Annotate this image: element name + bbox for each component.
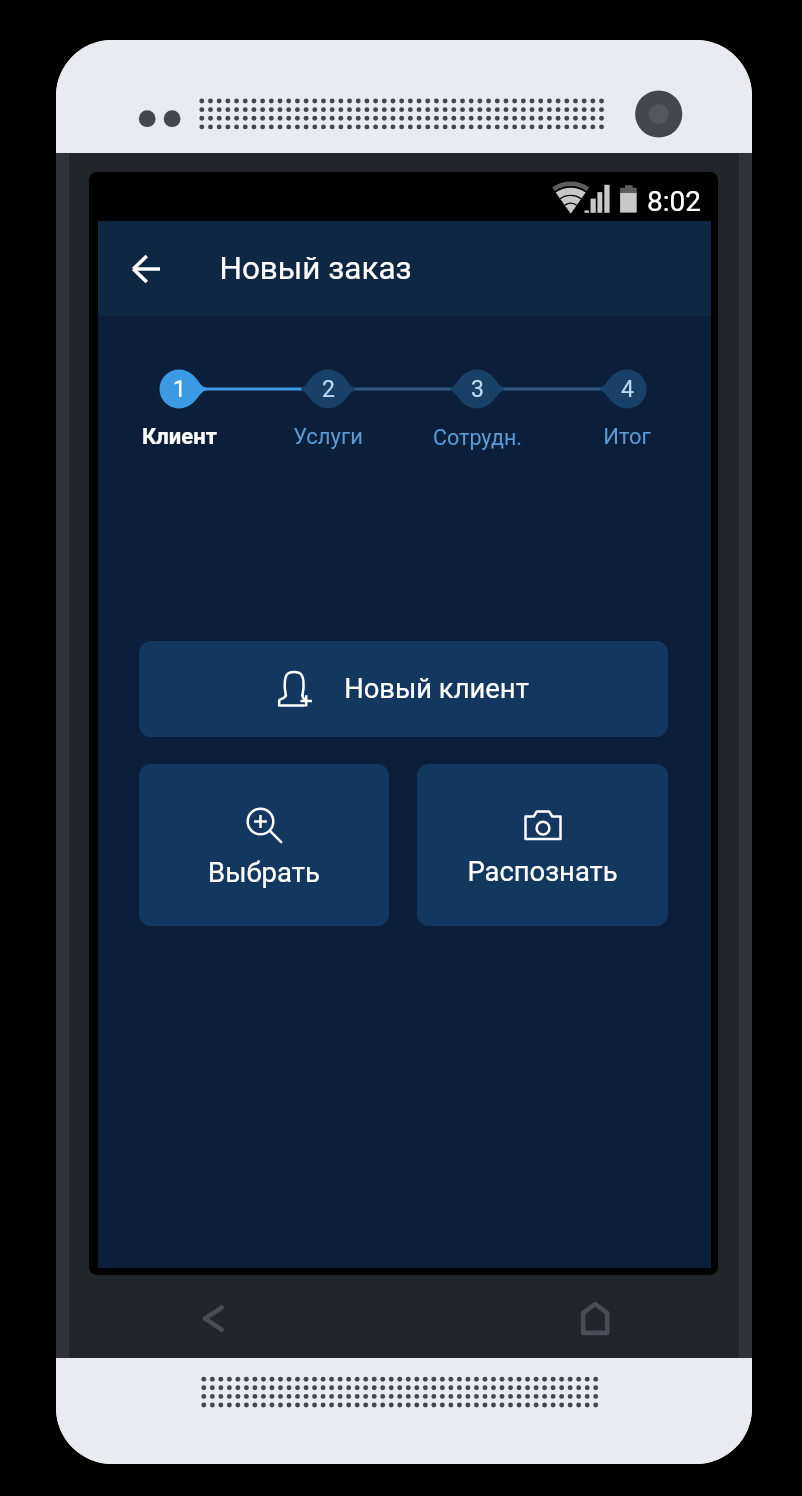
button[interactable]: Выбрать: [139, 764, 389, 926]
staticText: Выбрать: [208, 856, 320, 888]
button[interactable]: Распознать: [417, 764, 668, 926]
staticText: 1: [173, 376, 186, 403]
button[interactable]: Новый клиент: [139, 641, 668, 737]
button[interactable]: 3: [437, 353, 517, 425]
staticText: 4: [621, 376, 634, 403]
button[interactable]: Back: [118, 241, 174, 297]
staticText: Клиент: [142, 424, 217, 450]
staticText: Распознать: [467, 856, 618, 888]
staticText: 3: [471, 376, 484, 403]
button[interactable]: 1: [139, 353, 219, 425]
staticText: 8:02: [647, 185, 701, 218]
button[interactable]: 4: [587, 353, 667, 425]
staticText: Услуги: [293, 424, 363, 450]
staticText: Новый заказ: [219, 250, 412, 287]
staticText: 2: [322, 376, 335, 403]
staticText: Сотрудн.: [433, 425, 522, 450]
staticText: Новый клиент: [344, 673, 529, 705]
button[interactable]: 2: [288, 353, 368, 425]
staticText: Итог: [603, 424, 651, 450]
